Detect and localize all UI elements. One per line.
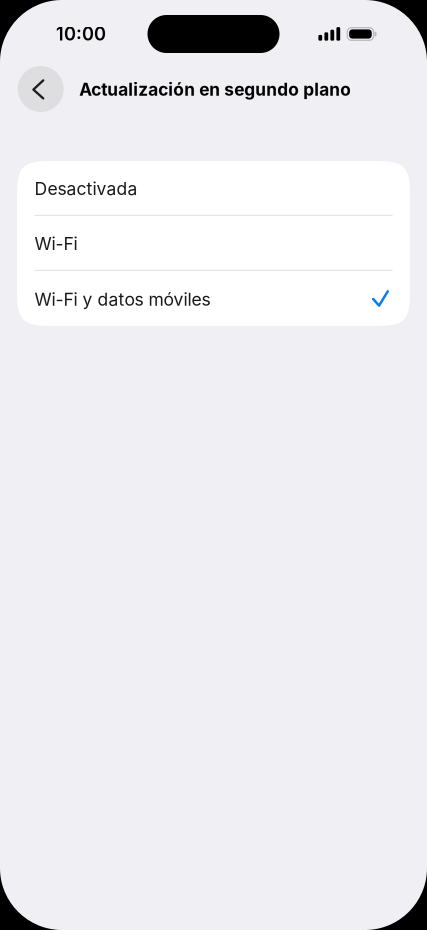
staticText: Wi-Fi: [34, 233, 77, 254]
staticText: Actualización en segundo plano: [79, 79, 351, 100]
button[interactable]: Desactivada: [17, 161, 410, 216]
button[interactable]: Wi-Fi: [17, 216, 410, 271]
button[interactable]: Wi-Fi y datos móviles: [17, 271, 410, 326]
staticText: Desactivada: [34, 178, 137, 199]
staticText: 10:00: [56, 23, 106, 45]
staticText: Wi-Fi y datos móviles: [34, 289, 210, 310]
button[interactable]: Atrás: [18, 66, 64, 112]
